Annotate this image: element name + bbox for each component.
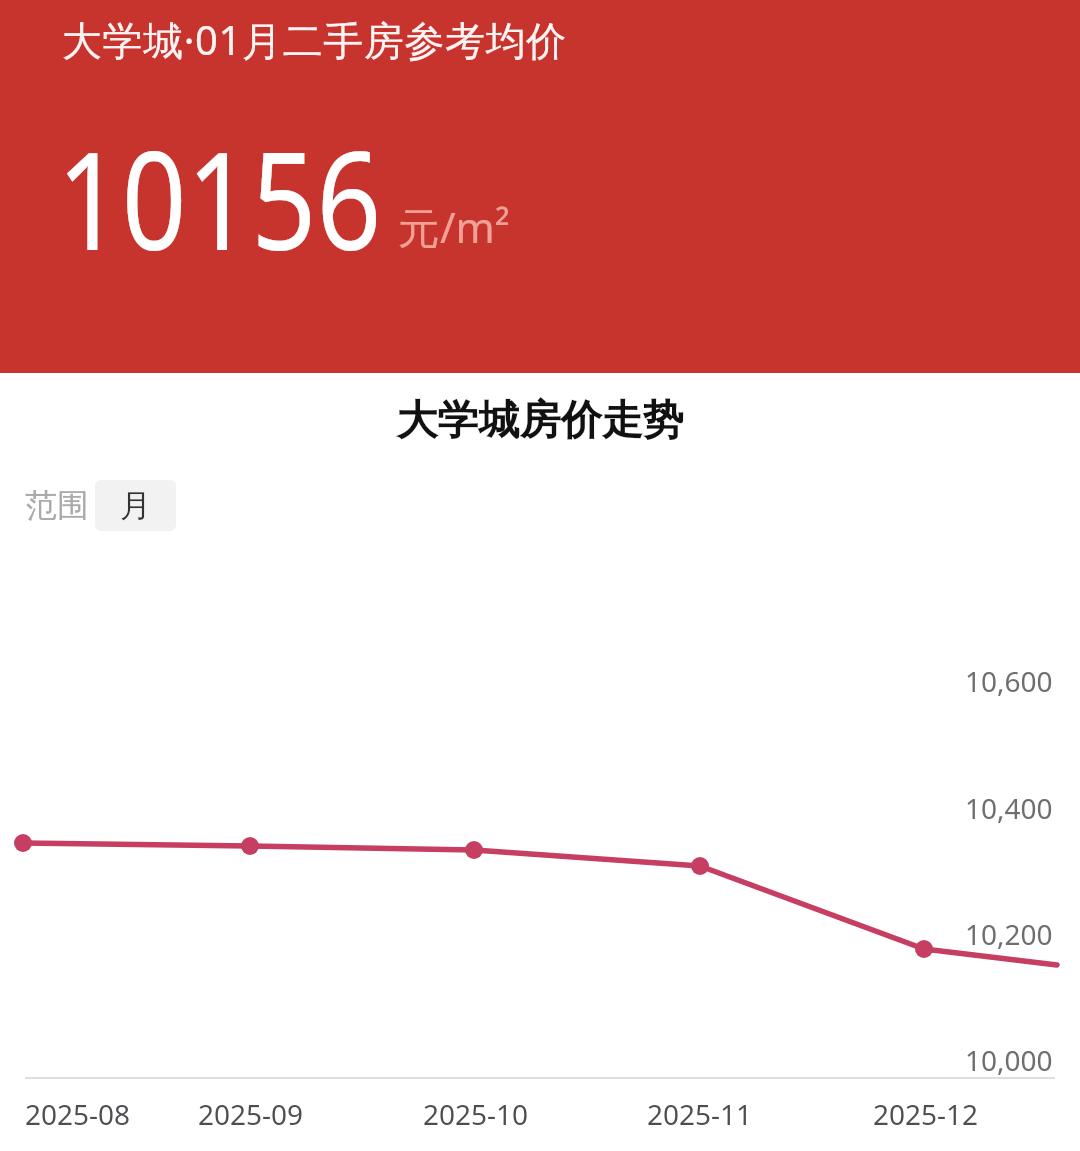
staticText: 2025-10 — [423, 1095, 529, 1133]
staticText: 2025-08 — [25, 1095, 131, 1133]
staticText: 10,000 — [965, 1041, 1053, 1079]
staticText: 2025-11 — [647, 1095, 753, 1133]
staticText: 10156 — [57, 106, 382, 290]
button[interactable]: 月 — [95, 480, 176, 531]
staticText: 月 — [120, 486, 151, 525]
staticText: 大学城·01月二手房参考均价 — [62, 12, 567, 67]
staticText: 大学城房价走势 — [0, 395, 1080, 447]
staticText: 2025-12 — [873, 1095, 979, 1133]
staticText: 10,400 — [965, 789, 1053, 827]
staticText: 10,200 — [965, 915, 1053, 953]
staticText: 10,600 — [965, 662, 1053, 700]
staticText: 2025-09 — [198, 1095, 304, 1133]
staticText: 范围 — [25, 485, 89, 525]
staticText: 元/m² — [398, 198, 510, 255]
